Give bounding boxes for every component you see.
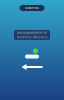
staticText: SOMETHING — [25, 6, 39, 10]
staticText: consectetur adipiscing — [16, 35, 47, 39]
button[interactable]: SOMETHING — [19, 5, 44, 11]
staticText: Lorem ipsum dolor sit — [17, 31, 47, 34]
